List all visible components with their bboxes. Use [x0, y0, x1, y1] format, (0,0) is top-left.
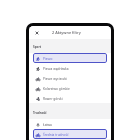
- button[interactable]: Zamknij: [32, 28, 41, 37]
- staticText: Piesze wycieczki: [43, 77, 68, 81]
- button[interactable]: Łatwa: [33, 119, 107, 129]
- staticText: Piesza wędrówka: [43, 67, 69, 71]
- button[interactable]: Piesze wycieczki: [33, 73, 107, 83]
- button[interactable]: Pieszo: [33, 53, 107, 63]
- staticText: 2 Aktywne filtry: [52, 30, 81, 35]
- staticText: Rower górski: [43, 97, 63, 101]
- staticText: Średnia trudność: [43, 133, 69, 137]
- staticText: Trudność: [33, 111, 47, 115]
- staticText: Sport: [33, 45, 42, 49]
- button[interactable]: Rower górski: [33, 93, 107, 103]
- staticText: Pieszo: [43, 57, 53, 61]
- staticText: Łatwa: [43, 123, 52, 127]
- button[interactable]: Kolarstwo górskie: [33, 83, 107, 93]
- button[interactable]: Piesza wędrówka: [33, 63, 107, 73]
- staticText: Kolarstwo górskie: [43, 87, 70, 91]
- button[interactable]: Średnia trudność: [33, 129, 107, 139]
